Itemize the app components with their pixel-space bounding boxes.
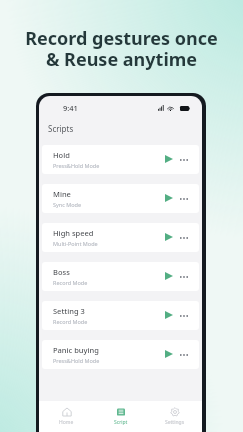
staticText: Setting 3 xyxy=(53,306,85,316)
staticText: Record gestures once & Reuse anytime xyxy=(0,26,243,71)
button[interactable]: More options xyxy=(175,268,193,286)
button[interactable]: More options xyxy=(175,346,193,364)
staticText: Panic buying xyxy=(53,345,99,355)
button[interactable]: Play script xyxy=(160,267,178,285)
staticText: Record Mode xyxy=(53,318,88,325)
button[interactable]: Play script xyxy=(160,306,178,324)
button[interactable]: Play script xyxy=(160,228,178,246)
staticText: Press&Hold Mode xyxy=(53,162,100,169)
button[interactable]: Play script xyxy=(160,189,178,207)
button[interactable]: Mine xyxy=(42,184,199,213)
button[interactable]: High speed xyxy=(42,223,199,252)
staticText: High speed xyxy=(53,228,94,238)
button[interactable]: Hold xyxy=(42,145,199,174)
staticText: Mine xyxy=(53,189,71,199)
staticText: Script xyxy=(114,419,128,426)
button[interactable]: Play script xyxy=(160,150,178,168)
staticText: Boss xyxy=(53,267,70,277)
button[interactable]: More options xyxy=(175,229,193,247)
button[interactable]: More options xyxy=(175,190,193,208)
button[interactable]: More options xyxy=(175,307,193,325)
staticText: Home xyxy=(59,419,74,426)
button[interactable]: More options xyxy=(175,151,193,169)
button[interactable]: Setting 3 xyxy=(42,301,199,330)
staticText: Press&Hold Mode xyxy=(53,357,100,364)
staticText: Settings xyxy=(165,419,185,426)
button[interactable]: Settings xyxy=(148,401,202,432)
button[interactable]: Panic buying xyxy=(42,340,199,369)
staticText: Hold xyxy=(53,150,70,160)
staticText: Scripts xyxy=(48,123,74,134)
staticText: Multi-Point Mode xyxy=(53,240,98,247)
staticText: Record Mode xyxy=(53,279,88,286)
staticText: Sync Mode xyxy=(53,201,82,208)
button[interactable]: Script xyxy=(94,401,148,432)
button[interactable]: Home xyxy=(39,401,94,432)
button[interactable]: Play script xyxy=(160,345,178,363)
staticText: 9:41 xyxy=(63,103,78,113)
button[interactable]: Boss xyxy=(42,262,199,291)
